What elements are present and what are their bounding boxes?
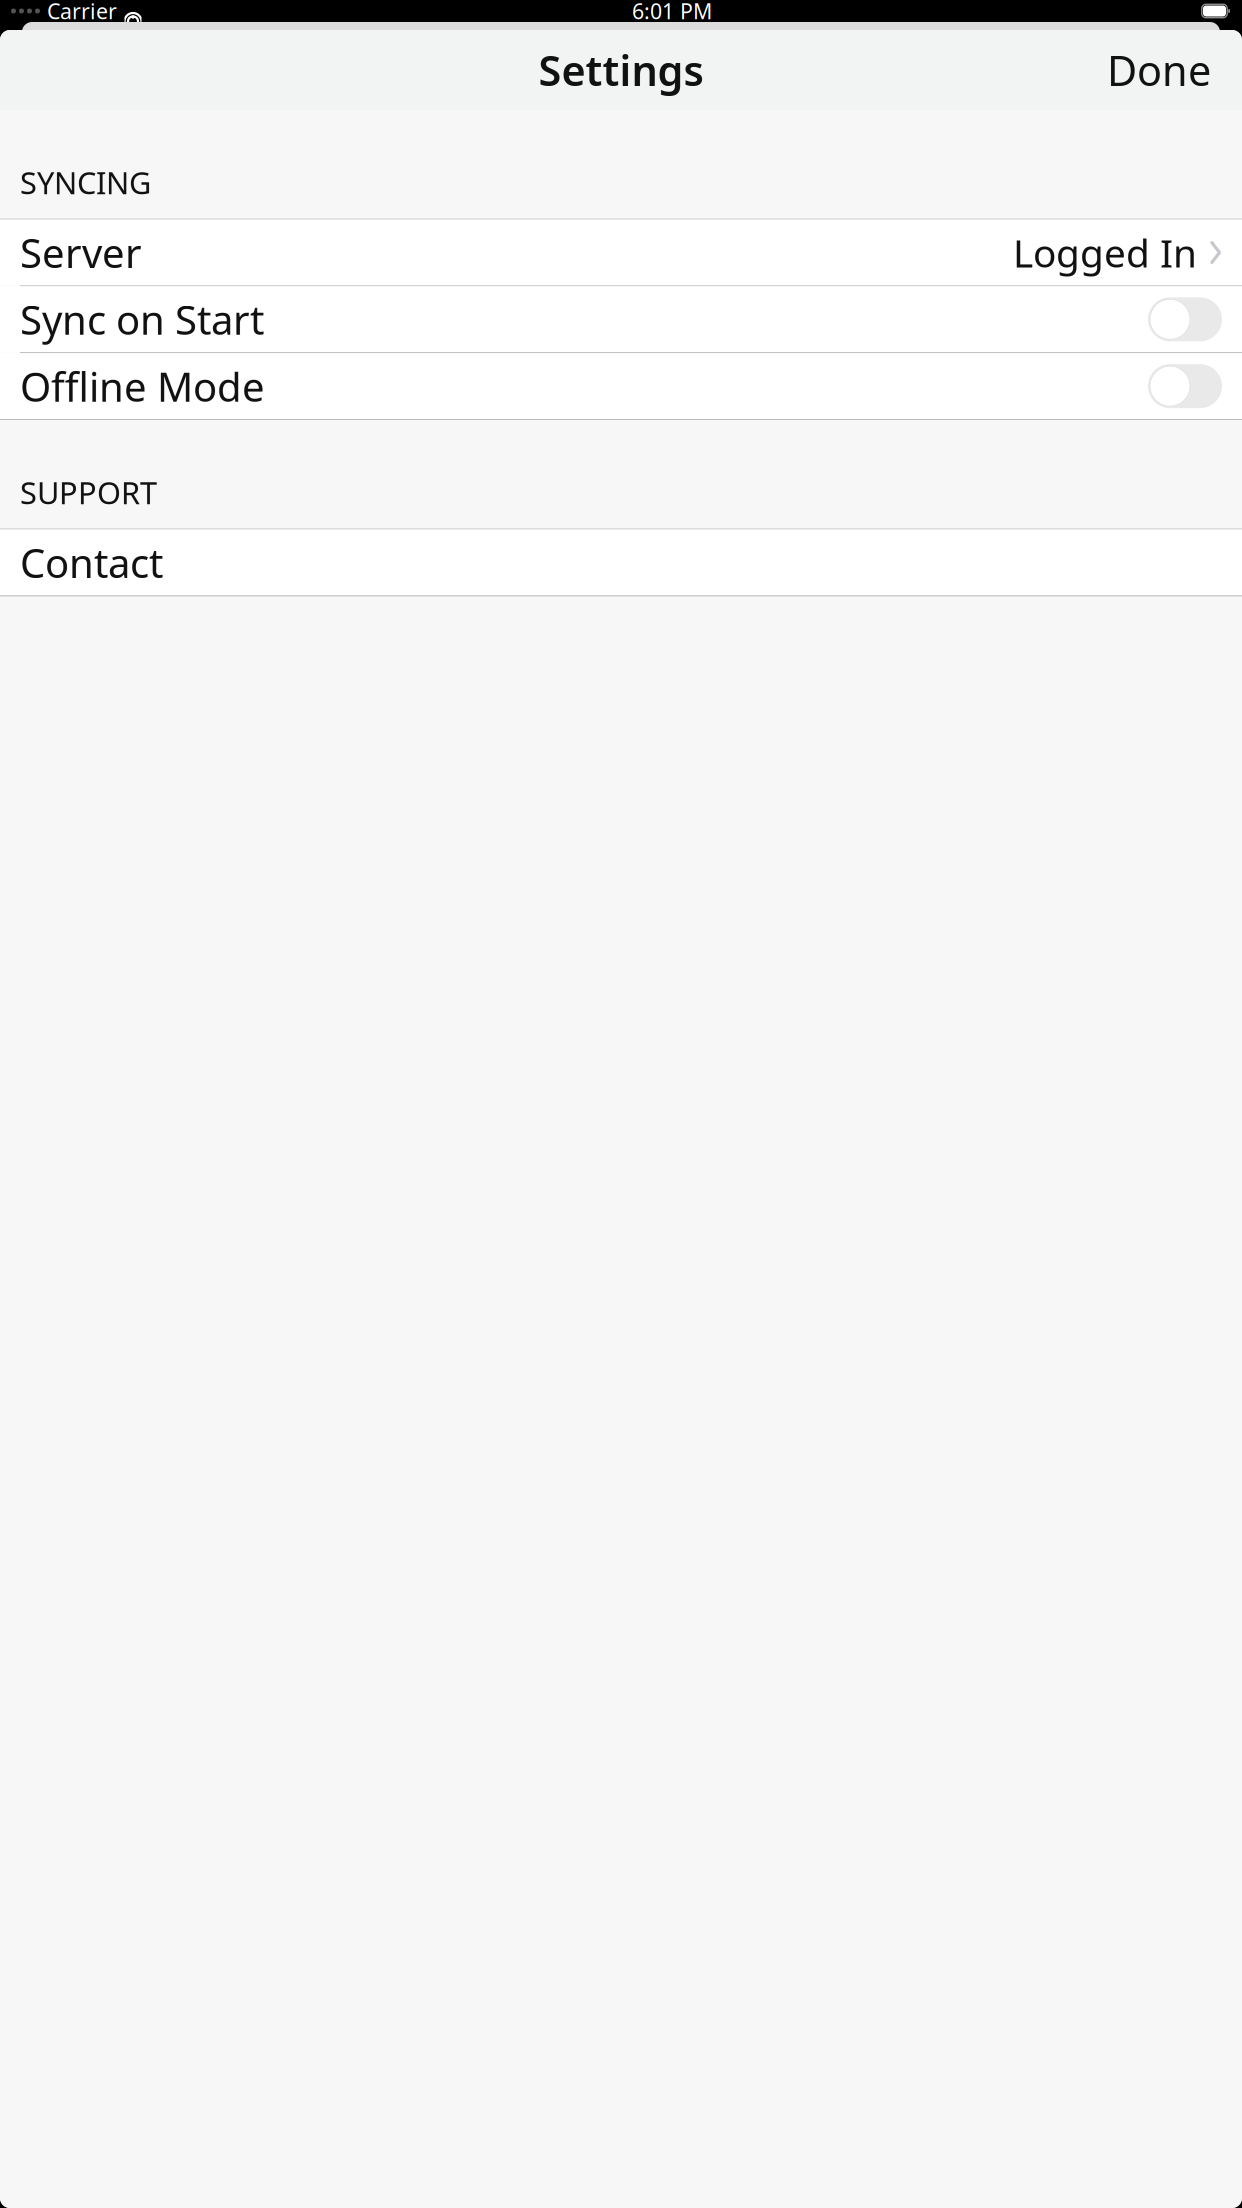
staticText: SYNCING — [20, 162, 151, 203]
button[interactable]: Server — [0, 219, 1242, 285]
staticText: Logged In — [1013, 227, 1197, 278]
button[interactable]: Offline Mode — [0, 353, 1242, 419]
staticText: Carrier — [47, 0, 117, 25]
staticText: Settings — [538, 43, 703, 97]
staticText: Server — [20, 226, 142, 279]
button[interactable]: Sync on Start — [0, 286, 1242, 352]
staticText: Contact — [20, 536, 163, 589]
staticText: Sync on Start — [20, 293, 264, 346]
button[interactable]: Contact — [0, 529, 1242, 595]
button[interactable]: Done — [1095, 35, 1223, 105]
staticText: 6:01 PM — [632, 0, 712, 25]
staticText: Offline Mode — [20, 360, 265, 413]
staticText: Done — [1107, 43, 1211, 97]
staticText: SUPPORT — [20, 472, 157, 513]
